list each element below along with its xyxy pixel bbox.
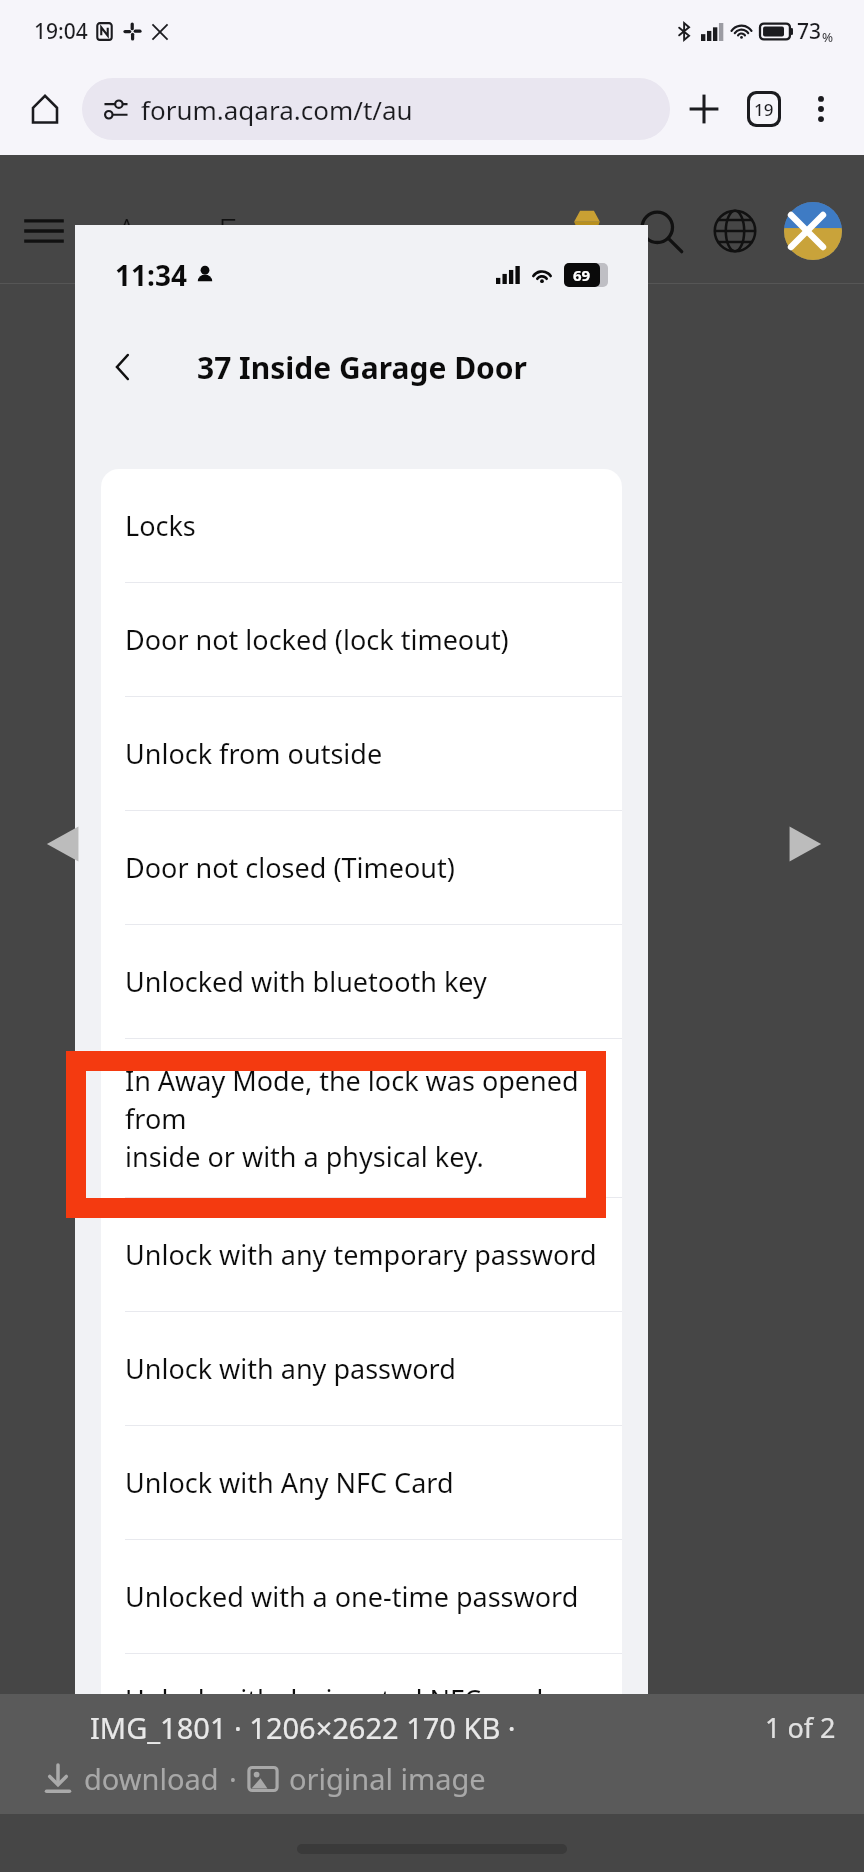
staticText: In Away Mode, the lock was opened from i… [125,1062,598,1175]
staticText: Door not locked (lock timeout) [125,621,509,658]
button[interactable]: Door not locked (lock timeout) [101,583,622,696]
staticText: 1 of 2 [765,1709,836,1746]
staticText: Locks [125,507,196,544]
button[interactable]: Unlock with designated NFC card [101,1654,622,1745]
button[interactable]: Unlocked with a one-time password [101,1540,622,1653]
staticText: Unlocked with a one-time password [125,1578,579,1615]
staticText: download [84,1759,219,1798]
staticText: 11:34 [115,256,187,294]
staticText: Unlocked with bluetooth key [125,963,487,1000]
staticText: IMG_1801 · 1206×2622 170 KB · [90,1708,516,1747]
staticText: Aqara Forum [116,207,323,255]
staticText: Unlock with any password [125,1350,456,1387]
staticText: % [822,28,834,46]
button[interactable]: Back [97,341,149,393]
button[interactable]: Unlock from outside [101,697,622,810]
button[interactable]: Unlocked with bluetooth key [101,925,622,1038]
staticText: forum.aqara.com/t/au [141,92,413,127]
button[interactable]: In Away Mode, the lock was opened from i… [101,1039,622,1197]
staticText: 37 Inside Garage Door [197,347,527,388]
staticText: · [229,1759,237,1798]
button[interactable]: download [42,1759,486,1798]
staticText: original image [289,1759,486,1798]
staticText: Door not closed (Timeout) [125,849,455,886]
button[interactable]: Previous image [42,822,86,866]
staticText: Unlock with designated NFC card [125,1681,544,1718]
button[interactable]: Tabs [736,81,792,137]
button[interactable]: Unlock with Any NFC Card [101,1426,622,1539]
button[interactable]: More options [796,84,846,134]
staticText: Unlock with any temporary password [125,1236,597,1273]
button[interactable]: Unlock with any password [101,1312,622,1425]
staticText: 73 [797,17,822,46]
button[interactable]: Locks [101,469,622,582]
button[interactable]: New tab [676,81,732,137]
staticText: 69 [573,265,591,285]
staticText: 19 [754,98,774,121]
button[interactable]: Door not closed (Timeout) [101,811,622,924]
staticText: Unlock from outside [125,735,383,772]
button[interactable]: Unlock with any temporary password [101,1198,622,1311]
button[interactable]: Close [784,202,842,260]
button[interactable]: Home [18,82,72,136]
button[interactable]: Next image [782,822,826,866]
staticText: Unlock with Any NFC Card [125,1464,454,1501]
staticText: 19:04 [34,17,88,46]
button[interactable]: forum.aqara.com/t/au [82,78,670,140]
